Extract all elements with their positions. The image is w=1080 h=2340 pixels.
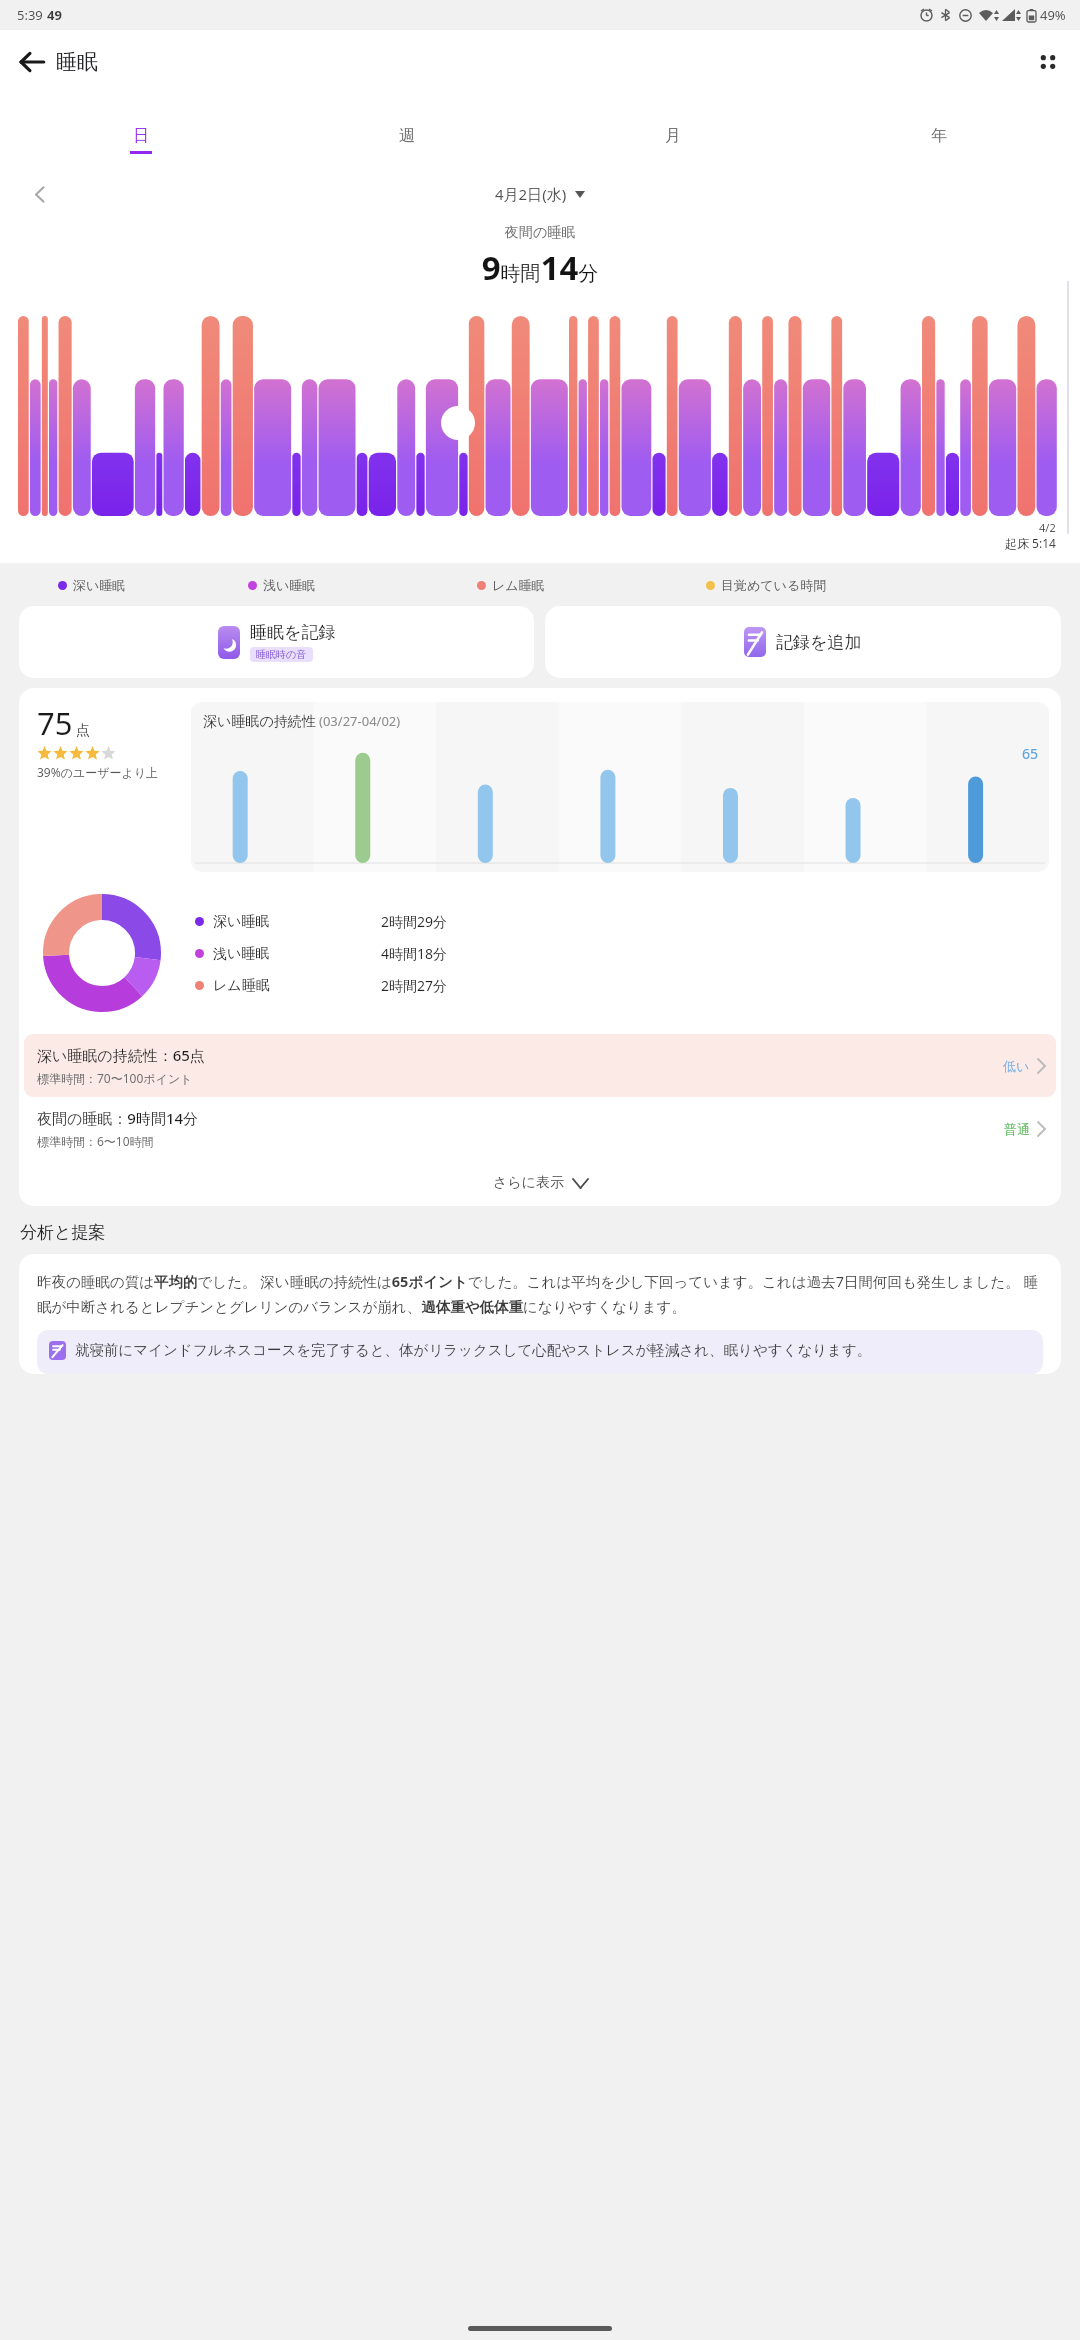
button[interactable]: さらに表示 [19,1160,1061,1206]
button[interactable]: 4月2日(水) [489,181,591,207]
staticText: 深い睡眠 [213,913,381,931]
staticText: 週 [399,126,415,146]
button[interactable]: 睡眠を記録 [19,606,534,678]
staticText: レム睡眠 [213,977,381,995]
button[interactable]: More options [1024,38,1072,86]
button[interactable]: Expand [441,406,475,440]
staticText: 4月2日(水) [495,184,567,204]
staticText: 4時間18分 [381,944,448,963]
staticText: 夜間の睡眠 [0,224,1080,242]
button[interactable]: 深い睡眠の持続性：65点 [24,1034,1056,1097]
staticText: 月 [665,126,681,146]
button[interactable]: 夜間の睡眠：9時間14分 [24,1097,1056,1160]
button[interactable]: 月 [540,118,806,162]
button[interactable]: 年 [806,118,1072,162]
staticText: 5:39 [17,6,43,24]
staticText: 目覚めている時間 [721,577,827,593]
staticText: 2時間29分 [381,912,448,931]
staticText: 分析と提案 [20,1222,106,1243]
button[interactable]: 記録を追加 [545,606,1061,678]
staticText: 就寝前にマインドフルネスコースを完了すると、体がリラックスして心配やストレスが軽… [75,1341,872,1359]
button[interactable]: 就寝前にマインドフルネスコースを完了すると、体がリラックスして心配やストレスが軽… [37,1330,1043,1374]
staticText: 夜間の睡眠：9時間14分 [37,1108,199,1128]
staticText: 39%のユーザーより上 [37,764,159,780]
staticText: 深い睡眠の持続性：65点 [37,1045,205,1065]
staticText: 浅い睡眠 [213,945,381,963]
staticText: 起床 5:14 [1005,535,1056,551]
staticText: 記録を追加 [776,632,862,653]
button[interactable]: 週 [274,118,540,162]
staticText: 49% [1040,6,1066,24]
staticText: 睡眠時の音 [256,648,307,661]
staticText: 日 [133,126,149,146]
button[interactable]: Back [8,38,56,86]
staticText: 普通 [1004,1121,1030,1137]
staticText: レム睡眠 [492,577,545,593]
staticText: 65 [1022,744,1039,763]
staticText: 睡眠 [56,49,98,75]
staticText: 49 [47,6,62,24]
staticText: 昨夜の睡眠の質は平均的でした。 深い睡眠の持続性は65ポイントでした。これは平均… [37,1271,1043,1316]
staticText: 浅い睡眠 [263,577,316,593]
staticText: 深い睡眠 [73,577,126,593]
button[interactable]: 深い睡眠の持続性 (03/27-04/02) [191,702,1049,872]
staticText: 9時間14分 [0,245,1080,290]
staticText: 低い [1003,1058,1030,1074]
staticText: 標準時間：6〜10時間 [37,1133,154,1149]
staticText: 4/2 [1039,520,1056,535]
staticText: 睡眠を記録 [250,622,336,643]
staticText: 深い睡眠の持続性 (03/27-04/02) [203,712,401,730]
staticText: さらに表示 [493,1174,564,1192]
staticText: 75 点 [37,702,91,744]
staticText: 標準時間：70〜100ポイント [37,1070,193,1086]
staticText: 年 [931,126,947,146]
button[interactable]: Previous day [22,176,58,212]
staticText: 2時間27分 [381,976,448,995]
button[interactable]: 日 [8,118,274,162]
